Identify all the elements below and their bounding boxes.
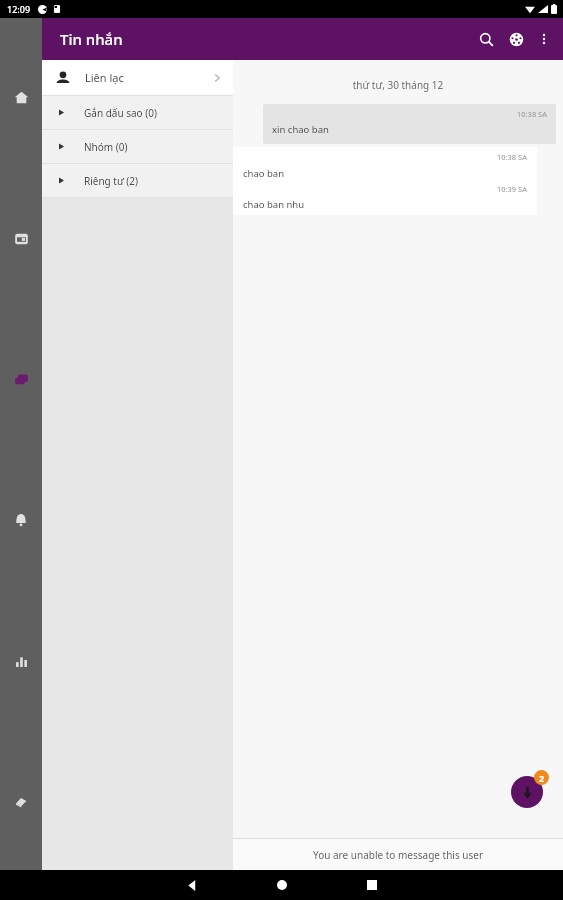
staticText: 10:38 SA xyxy=(517,109,548,119)
button[interactable]: Back xyxy=(173,870,211,900)
staticText: 10:39 SA xyxy=(233,184,527,194)
staticText: Gắn dấu sao (0) xyxy=(84,106,157,120)
staticText: chao ban xyxy=(243,167,285,180)
staticText: 2 xyxy=(539,772,545,784)
staticText: thứ tư, 30 tháng 12 xyxy=(233,78,563,92)
staticText: You are unable to message this user xyxy=(313,848,484,862)
staticText: Riêng tư (2) xyxy=(84,174,139,188)
staticText: Tin nhắn xyxy=(60,29,123,49)
button[interactable]: Riêng tư (2) xyxy=(42,164,233,197)
button[interactable]: Home xyxy=(2,78,40,116)
button[interactable]: Recents xyxy=(353,870,391,900)
button[interactable]: Nhóm (0) xyxy=(42,130,233,163)
button[interactable]: Notifications xyxy=(2,501,40,539)
staticText: Nhóm (0) xyxy=(84,140,128,154)
button[interactable]: Gắn dấu sao (0) xyxy=(42,96,233,129)
button[interactable]: Calendar xyxy=(2,219,40,257)
button[interactable]: Stats xyxy=(2,642,40,680)
button[interactable]: Messages xyxy=(2,360,40,398)
button[interactable]: Liên lạc xyxy=(42,60,233,95)
staticText: 12:09 xyxy=(7,3,31,15)
button[interactable]: Home xyxy=(263,870,301,900)
button[interactable]: Badges xyxy=(2,783,40,821)
button[interactable]: Globe xyxy=(501,24,531,54)
staticText: 10:38 SA xyxy=(233,152,527,162)
staticText: chao ban nhu xyxy=(243,198,305,211)
staticText: xin chao ban xyxy=(272,123,329,136)
staticText: Liên lạc xyxy=(85,70,124,85)
button[interactable]: Scroll to bottom xyxy=(511,776,543,808)
button[interactable]: 10:38 SA xyxy=(233,147,537,215)
button[interactable]: Search xyxy=(471,24,501,54)
button[interactable]: More options xyxy=(531,26,557,52)
button[interactable]: 10:38 SA xyxy=(263,104,556,144)
